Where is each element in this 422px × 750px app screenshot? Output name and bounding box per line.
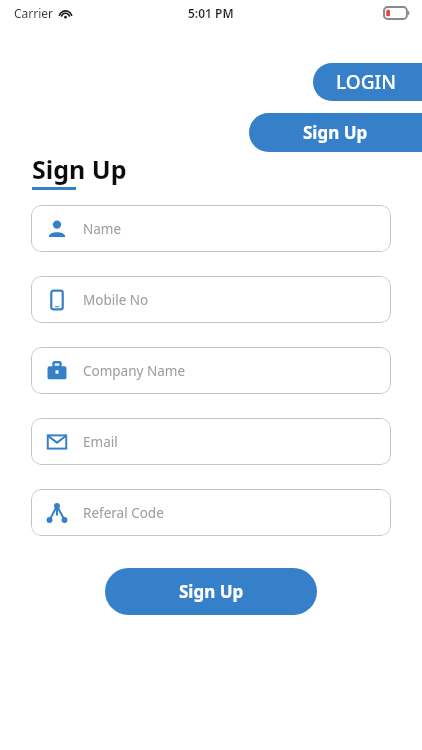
staticText: Sign Up bbox=[179, 580, 244, 603]
button[interactable]: Company Name bbox=[31, 347, 391, 394]
button[interactable]: Mobile No bbox=[31, 276, 391, 323]
staticText: Sign Up bbox=[32, 152, 127, 186]
staticText: 5:01 PM bbox=[188, 5, 234, 21]
staticText: Email bbox=[83, 433, 118, 451]
button[interactable]: Referal Code bbox=[31, 489, 391, 536]
staticText: Name bbox=[83, 220, 122, 238]
staticText: LOGIN bbox=[336, 69, 396, 95]
button[interactable]: LOGIN bbox=[313, 63, 422, 101]
button[interactable]: Email bbox=[31, 418, 391, 465]
staticText: Mobile No bbox=[83, 291, 149, 309]
staticText: Carrier bbox=[14, 5, 54, 21]
staticText: Sign Up bbox=[303, 121, 368, 144]
button[interactable]: Sign Up bbox=[249, 113, 422, 152]
button[interactable]: Sign Up bbox=[105, 568, 317, 615]
staticText: Company Name bbox=[83, 362, 186, 380]
button[interactable]: Name bbox=[31, 205, 391, 252]
staticText: Referal Code bbox=[83, 504, 164, 522]
